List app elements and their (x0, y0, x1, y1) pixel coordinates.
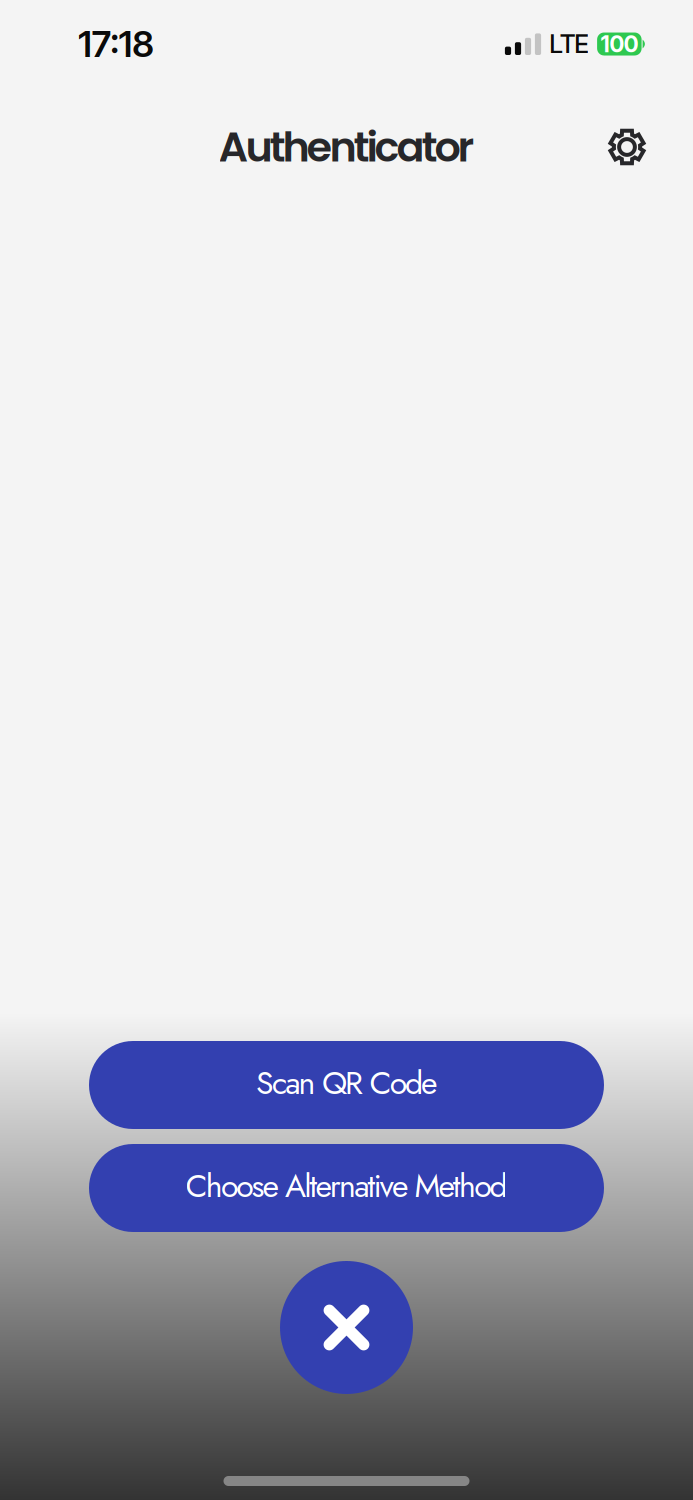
staticText: Scan QR Code (256, 1060, 437, 1106)
staticText: LTE (549, 29, 589, 59)
staticText: Authenticator (218, 118, 474, 176)
staticText: 17:18 (78, 22, 154, 66)
staticText: 100 (600, 30, 638, 58)
button[interactable]: Settings (599, 119, 655, 175)
staticText: Choose Alternative Method (186, 1163, 507, 1209)
button[interactable]: Choose Alternative Method (89, 1144, 604, 1232)
button[interactable]: Close (280, 1261, 413, 1394)
button[interactable]: Scan QR Code (89, 1041, 604, 1129)
